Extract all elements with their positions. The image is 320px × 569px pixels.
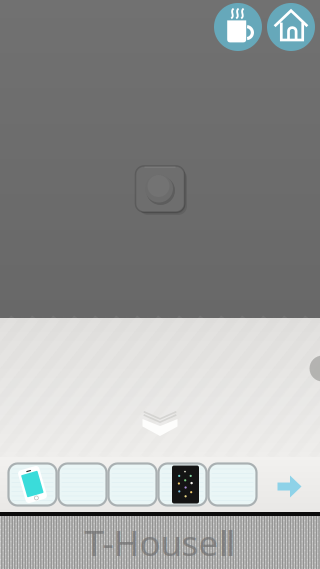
button[interactable]: Next inventory page (268, 463, 310, 505)
button[interactable]: Empty slot (108, 463, 156, 505)
button[interactable]: Door handle (132, 163, 188, 215)
button[interactable]: Move forward (135, 402, 185, 444)
button[interactable]: Empty slot (208, 463, 256, 505)
button[interactable]: Smartphone (8, 463, 56, 505)
button[interactable]: Star card (158, 463, 206, 505)
button[interactable]: Hint (214, 3, 262, 51)
button[interactable]: Home (267, 3, 315, 51)
button[interactable]: Empty slot (58, 463, 106, 505)
staticText: T-HouseⅡ (84, 519, 235, 565)
